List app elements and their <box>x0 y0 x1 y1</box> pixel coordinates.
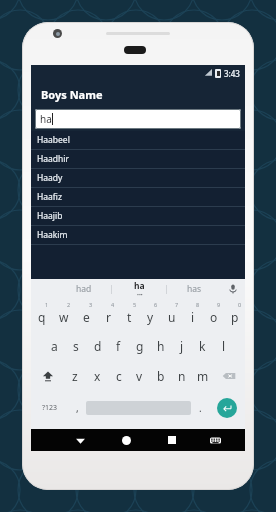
button[interactable]: Haady <box>31 169 245 188</box>
button[interactable]: 6 <box>140 299 161 331</box>
staticText: w <box>59 309 69 325</box>
staticText: , <box>76 401 79 415</box>
button[interactable]: Home <box>103 429 149 451</box>
button[interactable]: Backspace <box>213 361 245 391</box>
button[interactable]: g <box>129 331 150 361</box>
button[interactable]: 2 <box>53 299 75 331</box>
staticText: had <box>76 283 92 295</box>
staticText: d <box>94 338 102 354</box>
staticText: 4 <box>111 301 115 308</box>
staticText: Boys Name <box>41 87 103 102</box>
button[interactable]: had <box>57 279 111 299</box>
button[interactable]: . <box>191 391 209 425</box>
staticText: has <box>187 283 202 295</box>
staticText: f <box>116 338 121 354</box>
button[interactable]: Haakim <box>31 226 245 245</box>
button[interactable]: 7 <box>161 299 182 331</box>
button[interactable]: 3 <box>75 299 97 331</box>
button[interactable]: a <box>43 331 65 361</box>
button[interactable]: has <box>167 279 221 299</box>
staticText: 7 <box>175 301 179 308</box>
staticText: a <box>51 338 58 354</box>
staticText: l <box>222 338 226 354</box>
staticText: ••• <box>137 292 143 299</box>
button[interactable]: m <box>192 361 213 391</box>
button[interactable]: Haafiz <box>31 188 245 207</box>
staticText: Haajib <box>37 210 63 222</box>
button[interactable]: s <box>65 331 87 361</box>
staticText: t <box>127 309 132 325</box>
staticText: h <box>157 338 165 354</box>
button[interactable]: Haadhir <box>31 150 245 169</box>
staticText: 3:43 <box>224 68 240 79</box>
button[interactable]: 0 <box>224 299 245 331</box>
button[interactable]: h <box>150 331 171 361</box>
staticText: 0 <box>238 301 242 308</box>
button[interactable]: b <box>150 361 171 391</box>
button[interactable]: f <box>108 331 129 361</box>
staticText: g <box>136 338 144 354</box>
button[interactable]: Shift <box>31 361 64 391</box>
staticText: u <box>168 309 176 325</box>
button[interactable]: 5 <box>119 299 140 331</box>
staticText: 6 <box>154 301 158 308</box>
staticText: k <box>199 338 206 354</box>
staticText: s <box>73 338 79 354</box>
staticText: j <box>180 338 184 354</box>
button[interactable]: ha <box>35 109 241 129</box>
button[interactable]: 8 <box>182 299 203 331</box>
staticText: q <box>38 309 46 325</box>
button[interactable]: Haabeel <box>31 131 245 150</box>
staticText: Haabeel <box>37 134 70 146</box>
button[interactable]: Recents <box>149 429 195 451</box>
staticText: c <box>116 368 122 384</box>
button[interactable]: v <box>129 361 150 391</box>
button[interactable]: 4 <box>97 299 119 331</box>
button[interactable]: j <box>171 331 192 361</box>
button[interactable]: Enter <box>209 391 245 425</box>
button[interactable]: 9 <box>203 299 224 331</box>
staticText: Haakim <box>37 229 68 241</box>
staticText: Haadhir <box>37 153 70 165</box>
staticText: e <box>83 309 90 325</box>
button[interactable]: Keyboard <box>195 429 236 451</box>
staticText: p <box>231 309 239 325</box>
button[interactable]: d <box>87 331 108 361</box>
staticText: b <box>157 368 165 384</box>
staticText: y <box>147 309 154 325</box>
button[interactable]: , <box>68 391 86 425</box>
staticText: 2 <box>67 301 71 308</box>
staticText: v <box>136 368 143 384</box>
staticText: m <box>197 368 209 384</box>
staticText: 8 <box>196 301 200 308</box>
button[interactable]: Voice input <box>221 279 245 299</box>
staticText: 3 <box>89 301 93 308</box>
staticText: x <box>94 368 101 384</box>
button[interactable]: ha <box>112 279 166 299</box>
button[interactable]: c <box>108 361 129 391</box>
staticText: . <box>199 401 202 415</box>
staticText: ha <box>134 280 145 292</box>
button[interactable]: k <box>192 331 213 361</box>
button[interactable]: z <box>64 361 86 391</box>
staticText: z <box>72 368 78 384</box>
button[interactable]: l <box>213 331 234 361</box>
staticText: 1 <box>45 301 49 308</box>
staticText: n <box>178 368 186 384</box>
staticText: 5 <box>133 301 137 308</box>
button[interactable]: Haajib <box>31 207 245 226</box>
staticText: ha <box>40 112 52 126</box>
staticText: o <box>210 309 218 325</box>
staticText: Haafiz <box>37 191 62 203</box>
staticText: i <box>191 309 195 325</box>
staticText: 9 <box>217 301 221 308</box>
button[interactable]: 1 <box>31 299 53 331</box>
button[interactable]: Back <box>57 429 103 451</box>
staticText: ?123 <box>42 403 58 413</box>
button[interactable]: ?123 <box>31 391 68 425</box>
button[interactable]: n <box>171 361 192 391</box>
staticText: Haady <box>37 172 63 184</box>
staticText: r <box>106 309 111 325</box>
button[interactable]: x <box>86 361 108 391</box>
